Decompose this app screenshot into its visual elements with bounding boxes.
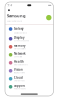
staticText: 9:41 xyxy=(7,3,14,7)
staticText: Display xyxy=(14,36,24,39)
button[interactable]: Vision xyxy=(5,67,53,75)
staticText: Vision xyxy=(14,68,23,71)
button[interactable]: Menu xyxy=(5,8,53,12)
button[interactable]: Memory xyxy=(5,43,53,51)
staticText: Cloud xyxy=(14,76,23,79)
staticText: Help and repairs xyxy=(14,88,26,90)
staticText: Network xyxy=(14,52,26,55)
staticText: Storage solutions xyxy=(14,48,26,50)
staticText: Smart services xyxy=(14,80,25,82)
staticText: Newsroom · Products xyxy=(7,20,22,22)
staticText: Support xyxy=(14,84,25,87)
staticText: Health xyxy=(14,60,24,63)
button[interactable]: Account xyxy=(46,15,51,20)
staticText: Mobile experience xyxy=(14,32,27,34)
button[interactable]: Health xyxy=(5,59,53,67)
staticText: Imaging systems xyxy=(14,72,25,74)
button[interactable]: Cloud xyxy=(5,75,53,83)
staticText: Samsung xyxy=(7,13,26,18)
staticText: ⦁⦁⦁ xyxy=(48,4,51,6)
staticText: Wearable sensors xyxy=(14,64,28,66)
button[interactable]: Network xyxy=(5,51,53,59)
button[interactable]: Galaxy xyxy=(5,25,53,35)
button[interactable]: Support xyxy=(5,83,53,91)
staticText: Screens and panels xyxy=(14,40,29,42)
staticText: Galaxy xyxy=(14,27,23,30)
button[interactable]: Display xyxy=(5,35,53,43)
staticText: Connectivity xyxy=(14,56,22,58)
staticText: Memory xyxy=(14,44,25,47)
